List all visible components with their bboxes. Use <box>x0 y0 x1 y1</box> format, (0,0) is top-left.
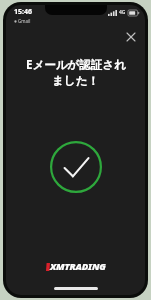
staticText: 15:46 <box>14 7 32 17</box>
button[interactable]: XMTRADING <box>46 260 106 273</box>
staticText: XMTRADING <box>50 260 106 273</box>
staticText: 4G <box>119 9 126 16</box>
staticText: Gmail <box>18 18 31 24</box>
button[interactable]: Close <box>121 27 141 47</box>
staticText: Eメールが認証され <box>26 57 126 73</box>
staticText: ました！ <box>52 74 99 88</box>
